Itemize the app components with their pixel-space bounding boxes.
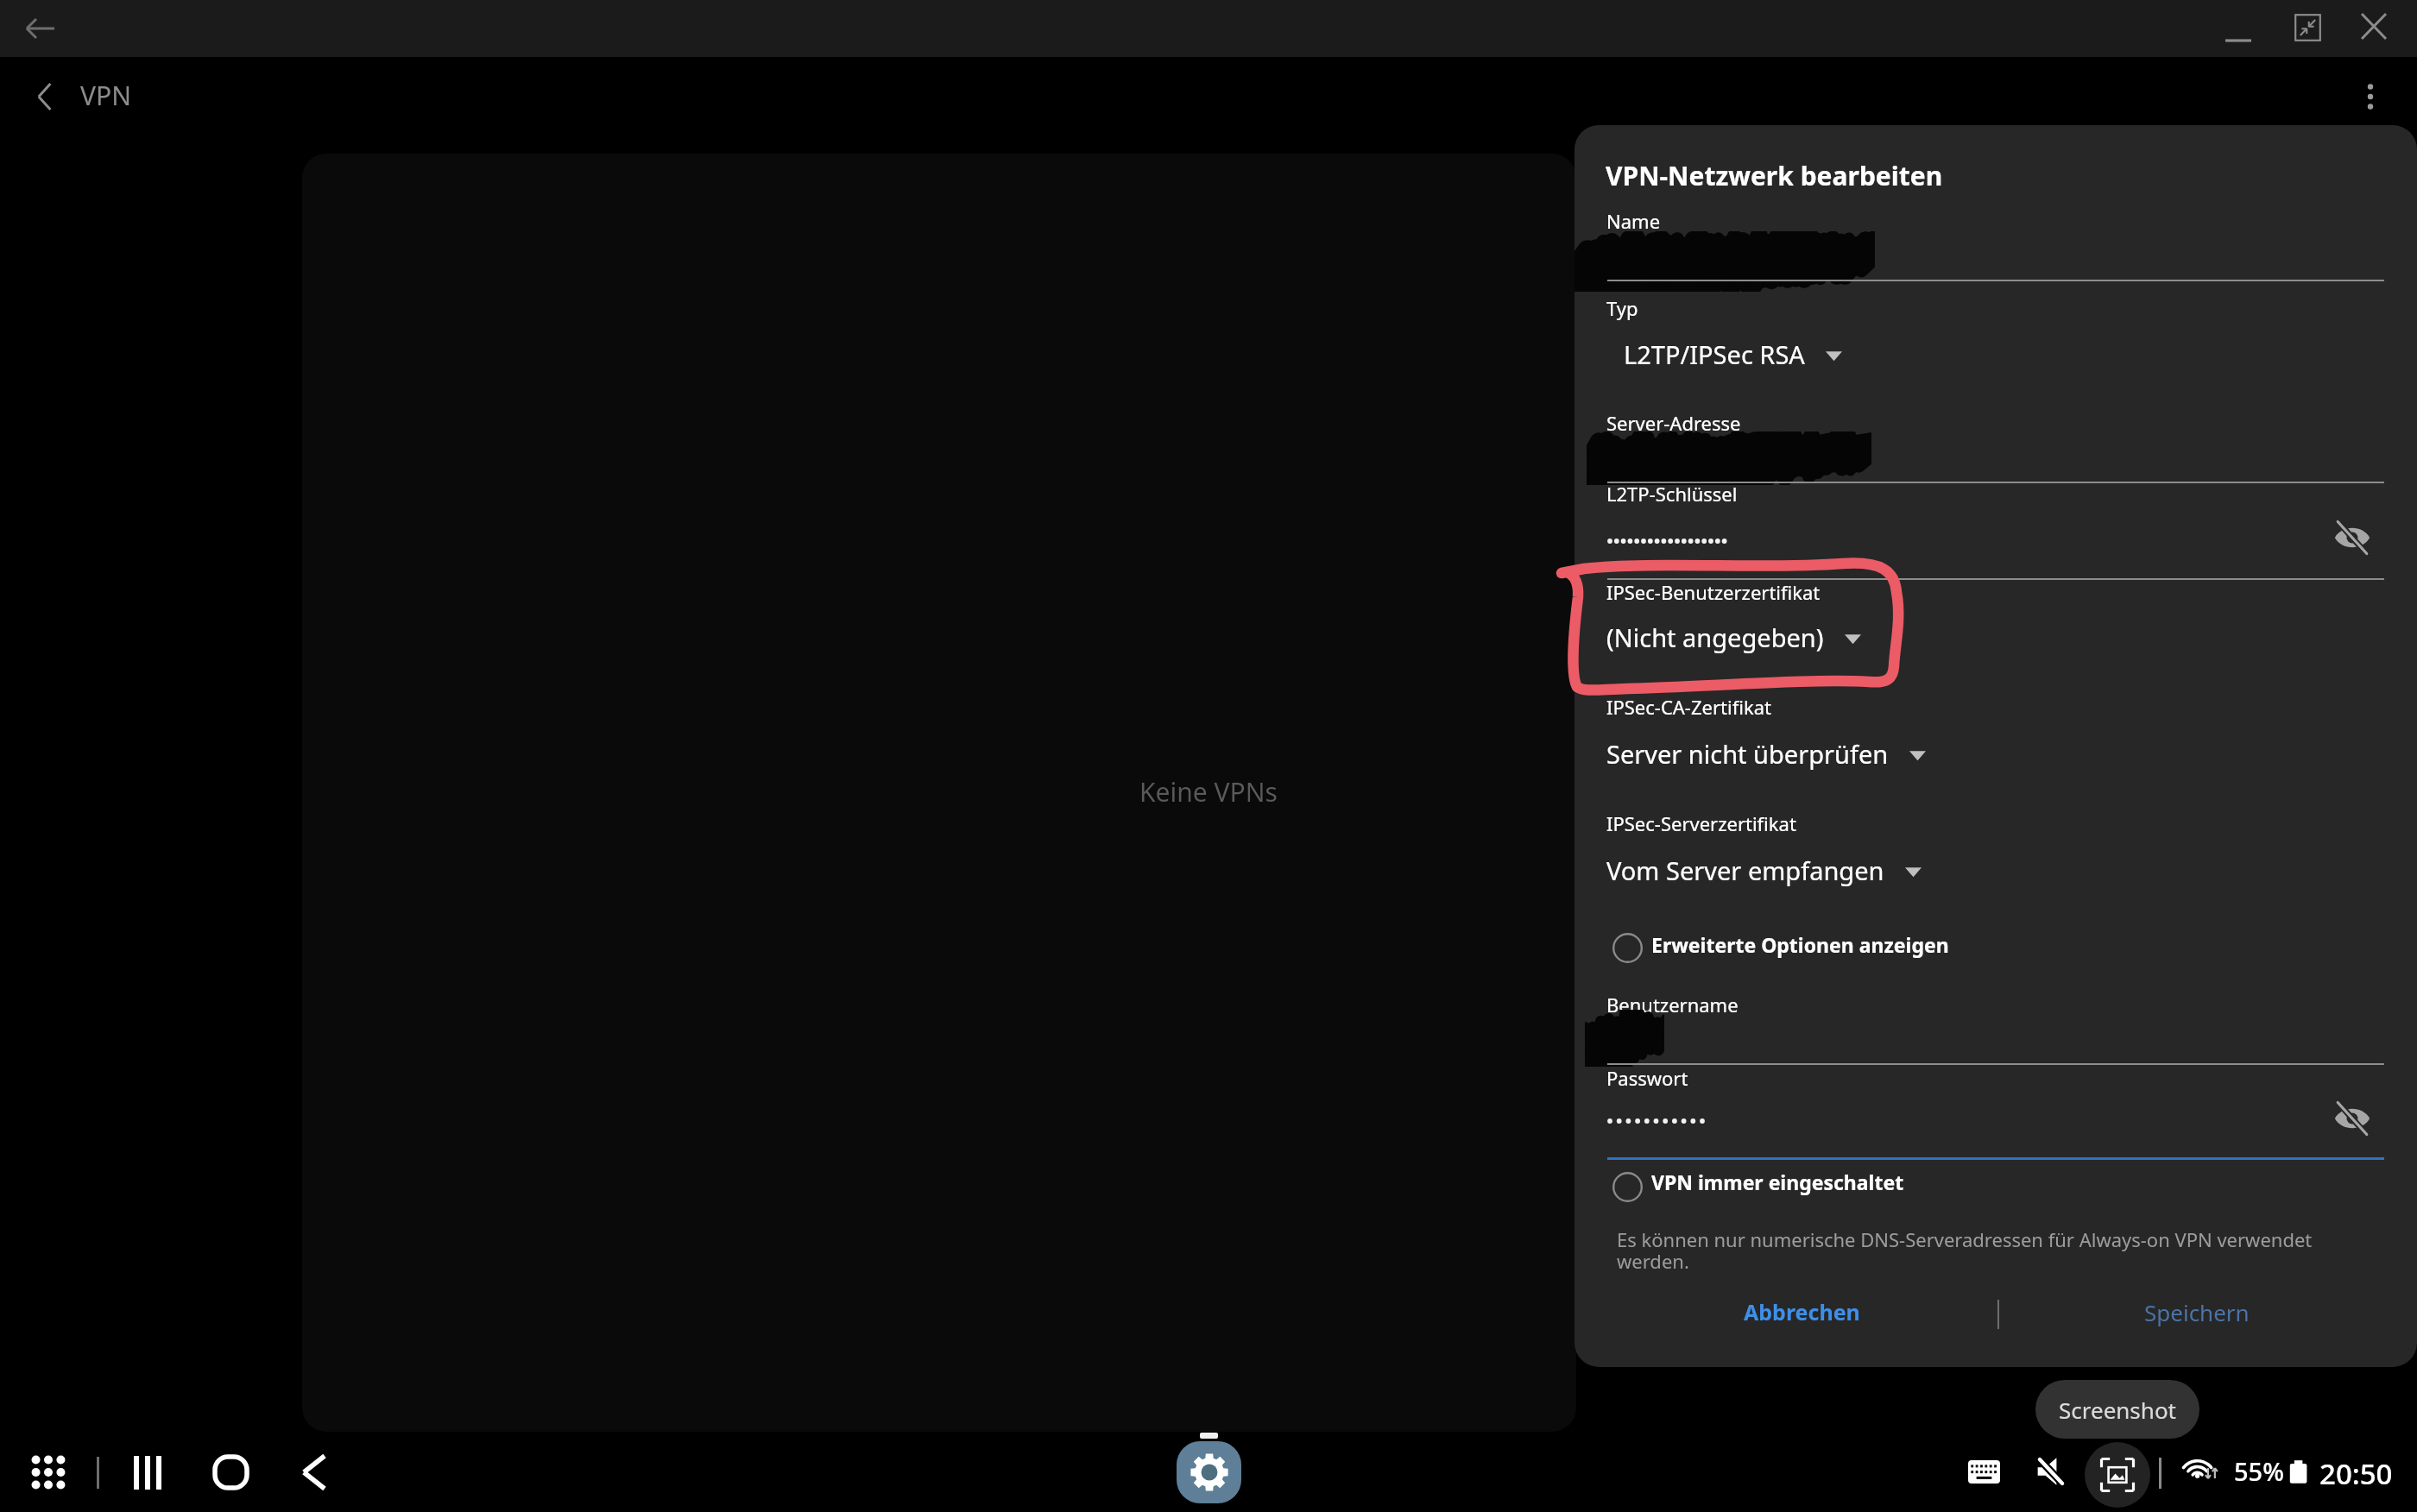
button[interactable]: Back — [19, 7, 62, 50]
button[interactable]: Apps — [24, 1448, 73, 1496]
staticText: IPSec-Benutzerzertifikat — [1606, 579, 1821, 605]
button[interactable]: Show password — [2325, 510, 2380, 565]
button[interactable]: Restore window — [2281, 2, 2333, 54]
staticText: Es können nur numerische DNS-Serveradres… — [1617, 1226, 2316, 1275]
button[interactable]: Close — [2348, 0, 2400, 52]
button[interactable]: Mute — [2029, 1449, 2073, 1494]
button[interactable]: Vom Server empfangen — [1606, 854, 1922, 887]
staticText: Vom Server empfangen — [1606, 854, 1884, 887]
staticText: Benutzername — [1606, 992, 1739, 1017]
staticText: Typ — [1606, 295, 1638, 321]
staticText: Name — [1606, 208, 1661, 234]
button[interactable]: More options — [2341, 67, 2400, 126]
button[interactable]: Speichern — [2003, 1281, 2391, 1343]
button[interactable]: VPN immer eingeschaltet — [1602, 1162, 1962, 1213]
button[interactable]: Screenshot — [2085, 1442, 2150, 1508]
staticText: Screenshot — [2059, 1395, 2177, 1425]
staticText: VPN — [80, 78, 131, 113]
staticText: IPSec-CA-Zertifikat — [1606, 694, 1771, 720]
staticText: Passwort — [1606, 1065, 1688, 1091]
button[interactable]: Minimize — [2199, 2, 2277, 79]
button[interactable]: Erweiterte Optionen anzeigen — [1602, 923, 1962, 973]
staticText: VPN-Netzwerk bearbeiten — [1606, 158, 1943, 193]
staticText: 20:50 — [2319, 1454, 2393, 1493]
button[interactable]: Recents — [123, 1448, 172, 1496]
button[interactable]: Show password — [2325, 1091, 2380, 1146]
button[interactable]: (Nicht angegeben) — [1606, 621, 1861, 654]
button[interactable]: Navigate up — [22, 72, 70, 121]
staticText: Server-Adresse — [1606, 410, 1741, 436]
button[interactable]: Settings — [1177, 1441, 1241, 1503]
staticText: Speichern — [2144, 1297, 2250, 1327]
button[interactable]: Server nicht überprüfen — [1606, 737, 1926, 771]
staticText: IPSec-Serverzertifikat — [1606, 810, 1796, 836]
staticText: Erweiterte Optionen anzeigen — [1651, 931, 1949, 958]
button[interactable]: Back — [290, 1448, 338, 1496]
staticText: Server nicht überprüfen — [1606, 737, 1889, 771]
button[interactable]: Abbrechen — [1607, 1281, 1996, 1343]
staticText: 55% — [2234, 1454, 2284, 1488]
staticText: L2TP-Schlüssel — [1606, 481, 1738, 507]
staticText: Keine VPNs — [1139, 774, 1278, 810]
button[interactable]: L2TP/IPSec RSA — [1624, 337, 1842, 371]
staticText: L2TP/IPSec RSA — [1624, 337, 1805, 371]
button[interactable]: Home — [206, 1448, 255, 1496]
button[interactable]: Keyboard — [1961, 1449, 2006, 1494]
staticText: VPN immer eingeschaltet — [1651, 1169, 1904, 1195]
staticText: (Nicht angegeben) — [1606, 621, 1824, 654]
staticText: Abbrechen — [1744, 1297, 1860, 1326]
